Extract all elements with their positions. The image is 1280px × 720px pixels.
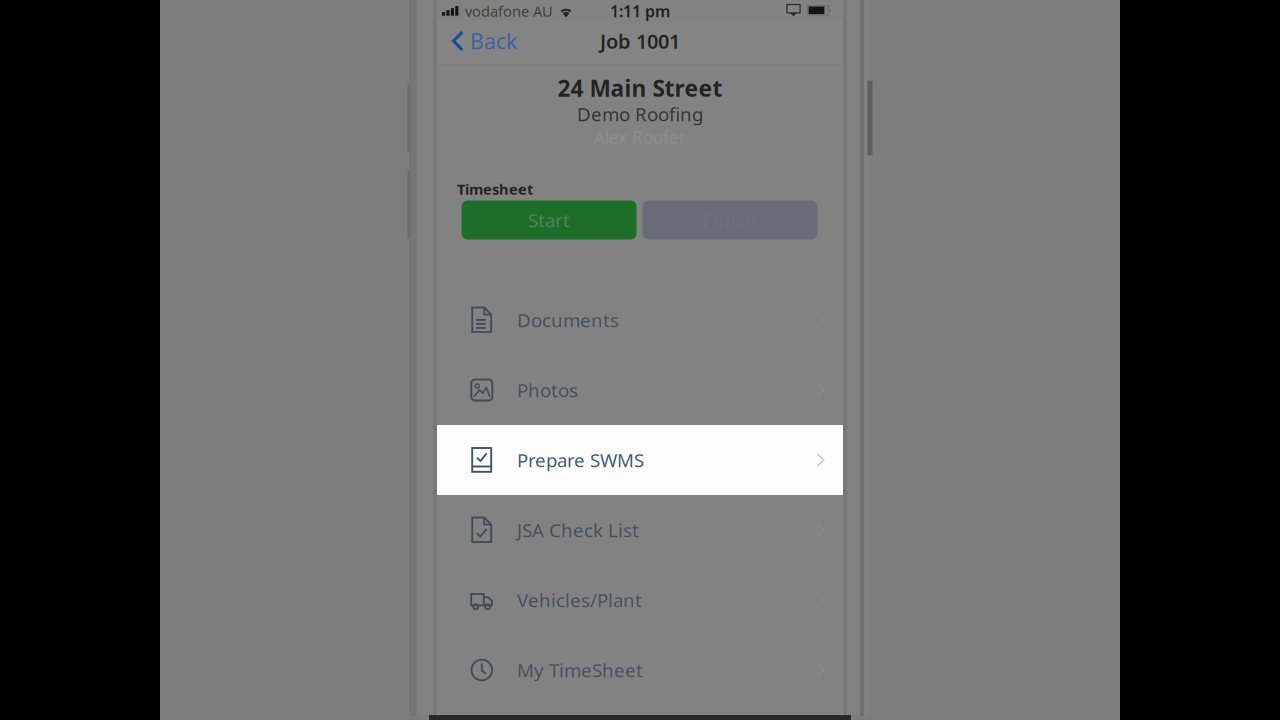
staticText: Documents xyxy=(517,308,619,332)
staticText: 24 Main Street xyxy=(557,73,722,103)
button[interactable]: Back xyxy=(450,19,542,62)
staticText: Timesheet xyxy=(457,179,533,199)
button[interactable]: Documents xyxy=(437,285,843,355)
staticText: Back xyxy=(470,27,517,55)
staticText: JSA Check List xyxy=(517,518,639,542)
button[interactable]: My TimeSheet xyxy=(437,635,843,705)
staticText: Demo Roofing xyxy=(577,102,703,126)
staticText: Alex Roofer xyxy=(594,125,686,148)
button[interactable]: Start xyxy=(461,200,636,239)
staticText: Prepare SWMS xyxy=(517,448,644,472)
staticText: My TimeSheet xyxy=(517,658,643,682)
staticText: 1:11 pm xyxy=(610,0,670,22)
staticText: Start xyxy=(528,208,570,232)
staticText: vodafone AU xyxy=(465,1,553,21)
button[interactable]: Photos xyxy=(437,355,843,425)
button[interactable]: Prepare SWMS xyxy=(437,425,843,495)
button[interactable]: JSA Check List xyxy=(437,495,843,565)
staticText: Vehicles/Plant xyxy=(517,588,642,612)
button[interactable]: Vehicles/Plant xyxy=(437,565,843,635)
button[interactable]: Finish xyxy=(642,200,817,239)
staticText: Job 1001 xyxy=(600,28,680,54)
staticText: Photos xyxy=(517,378,578,402)
